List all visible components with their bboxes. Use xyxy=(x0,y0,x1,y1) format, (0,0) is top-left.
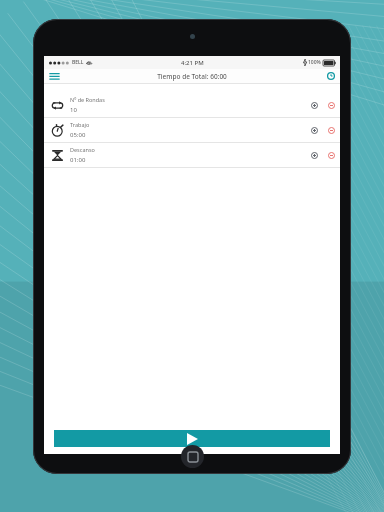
staticText: Nº de Rondas xyxy=(70,96,105,103)
staticText: Trabajo xyxy=(70,121,90,128)
staticText: Tiempo de Total: 60:00 xyxy=(157,72,227,81)
staticText: 10 xyxy=(70,106,77,114)
staticText: Descanso xyxy=(70,146,95,153)
staticText: 05:00 xyxy=(70,131,86,139)
staticText: 4:21 PM xyxy=(181,59,204,67)
staticText: BELL xyxy=(72,59,84,66)
staticText: 01:00 xyxy=(70,156,86,164)
staticText: 100% xyxy=(308,59,321,66)
button[interactable]: Increase Descanso xyxy=(306,143,322,167)
button[interactable]: Menu xyxy=(44,69,64,83)
button[interactable]: Decrease Descanso xyxy=(322,143,340,167)
button[interactable]: Nº de Rondas xyxy=(44,93,340,117)
button[interactable]: Increase Nº de Rondas xyxy=(306,93,322,117)
button[interactable]: Increase Trabajo xyxy=(306,118,322,142)
button[interactable]: Decrease Nº de Rondas xyxy=(322,93,340,117)
button[interactable]: Start xyxy=(54,430,330,447)
button[interactable]: Descanso xyxy=(44,143,340,167)
button[interactable]: Trabajo xyxy=(44,118,340,142)
button[interactable]: Info xyxy=(322,69,340,83)
button[interactable]: Decrease Trabajo xyxy=(322,118,340,142)
